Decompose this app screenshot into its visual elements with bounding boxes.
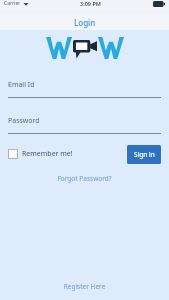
button[interactable]: Forgot Password?	[0, 173, 169, 184]
button[interactable]: Remember me!	[8, 149, 73, 159]
staticText: Password	[8, 116, 40, 126]
button[interactable]: Sign in	[127, 145, 161, 164]
staticText: 3:09 PM	[80, 0, 101, 7]
staticText: Login	[74, 17, 96, 28]
staticText: Remember me!	[22, 149, 73, 159]
button[interactable]: Email Id	[8, 80, 161, 98]
staticText: Sign in	[134, 150, 155, 159]
staticText: Email Id	[8, 80, 35, 90]
staticText: Carrier	[4, 0, 21, 7]
button[interactable]: Register Here	[0, 282, 169, 300]
button[interactable]: Password	[8, 116, 161, 134]
